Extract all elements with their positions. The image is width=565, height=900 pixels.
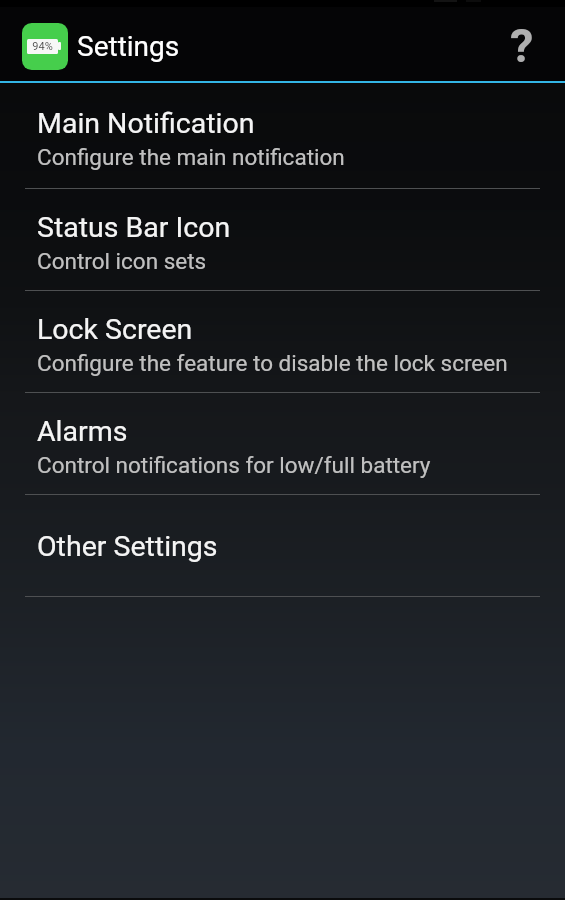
button[interactable]: Status Bar Icon xyxy=(0,189,565,291)
staticText: Settings xyxy=(77,30,180,63)
staticText: Main Notification xyxy=(37,107,255,140)
staticText: Configure the feature to disable the loc… xyxy=(37,350,508,376)
staticText: Configure the main notification xyxy=(37,144,345,170)
button[interactable]: Lock Screen xyxy=(0,291,565,393)
staticText: Other Settings xyxy=(37,530,218,563)
button[interactable]: Main Notification xyxy=(0,84,565,189)
staticText: Control icon sets xyxy=(37,248,207,274)
staticText: Control notifications for low/full batte… xyxy=(37,452,431,478)
button[interactable]: Other Settings xyxy=(0,495,565,597)
button[interactable]: Help xyxy=(489,15,551,77)
staticText: ? xyxy=(510,18,534,73)
staticText: Status Bar Icon xyxy=(37,211,231,244)
button[interactable]: Alarms xyxy=(0,393,565,495)
staticText: Alarms xyxy=(37,415,128,448)
staticText: 94% xyxy=(32,40,53,53)
staticText: Lock Screen xyxy=(37,313,193,346)
